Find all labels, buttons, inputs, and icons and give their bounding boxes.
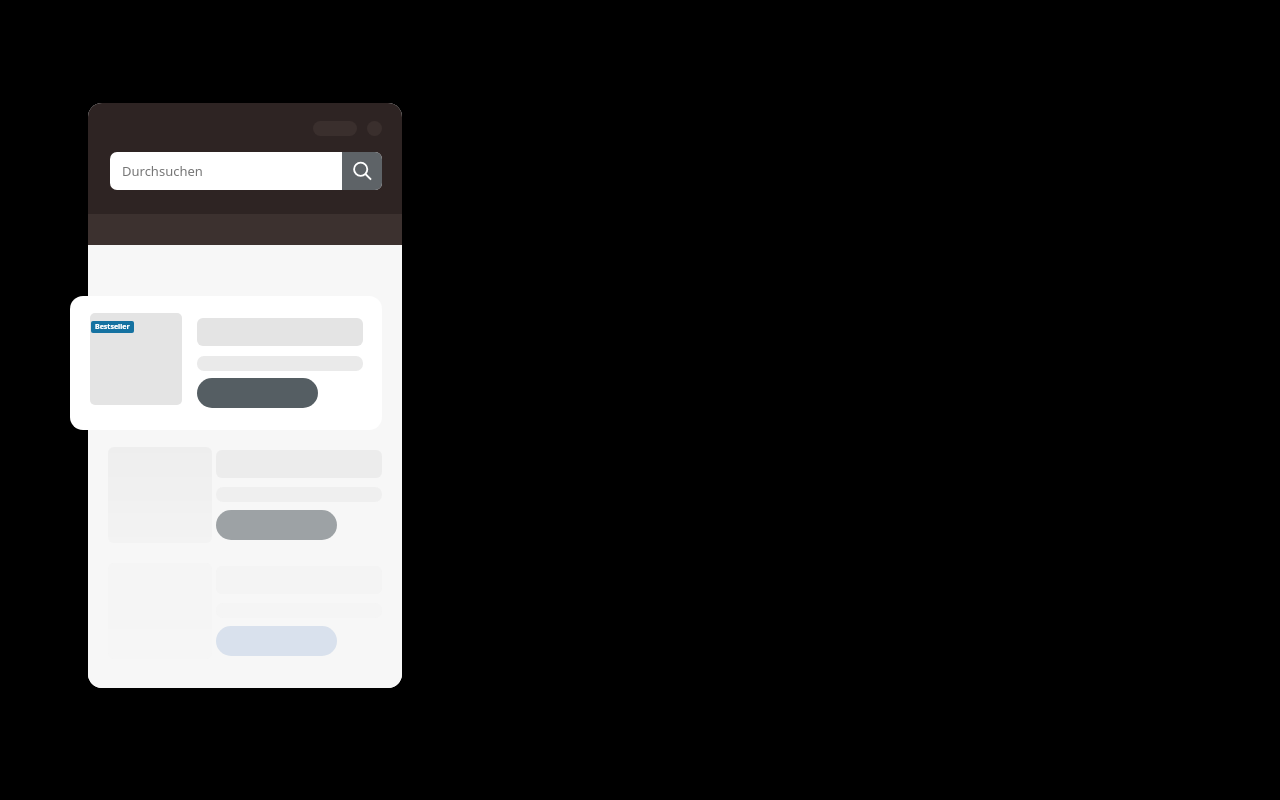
button[interactable]: Profile — [367, 121, 382, 136]
button[interactable]: Add to cart — [88, 553, 402, 667]
button[interactable]: Sort — [336, 363, 382, 381]
button[interactable]: Add to cart — [216, 510, 337, 540]
button[interactable]: Search — [342, 152, 382, 190]
button[interactable]: Add to cart — [88, 437, 402, 551]
button[interactable]: Add to cart — [216, 626, 337, 656]
staticText: Bestseller — [95, 322, 130, 332]
button[interactable]: Add to cart — [197, 378, 318, 408]
button[interactable]: Bestseller — [70, 296, 382, 430]
staticText: Durchsuchen — [122, 162, 203, 180]
button[interactable]: Durchsuchen — [110, 152, 382, 190]
